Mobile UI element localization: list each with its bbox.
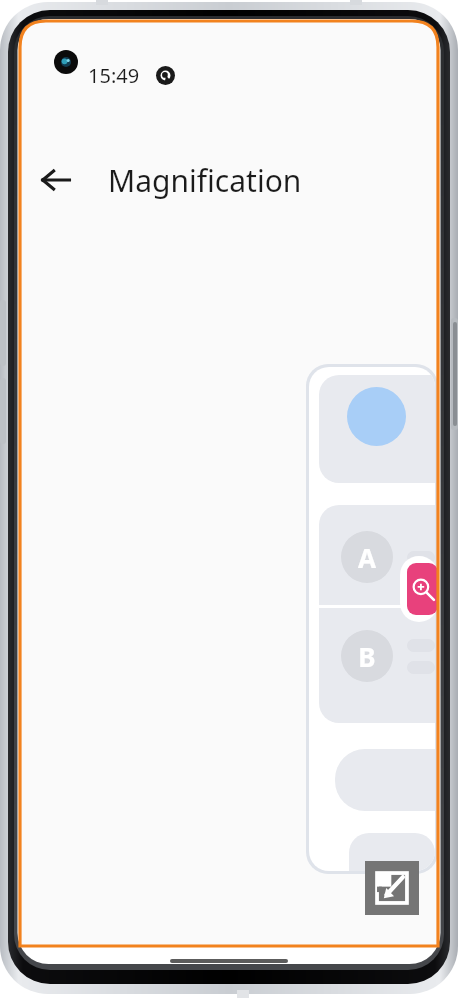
- staticText: Magnification: [108, 160, 302, 201]
- staticText: A: [358, 540, 376, 575]
- staticText: 15:49: [88, 62, 140, 89]
- button[interactable]: Magnifier: [407, 563, 438, 615]
- button[interactable]: Resize preview: [365, 861, 419, 915]
- button[interactable]: Back: [28, 152, 84, 208]
- staticText: B: [358, 639, 376, 674]
